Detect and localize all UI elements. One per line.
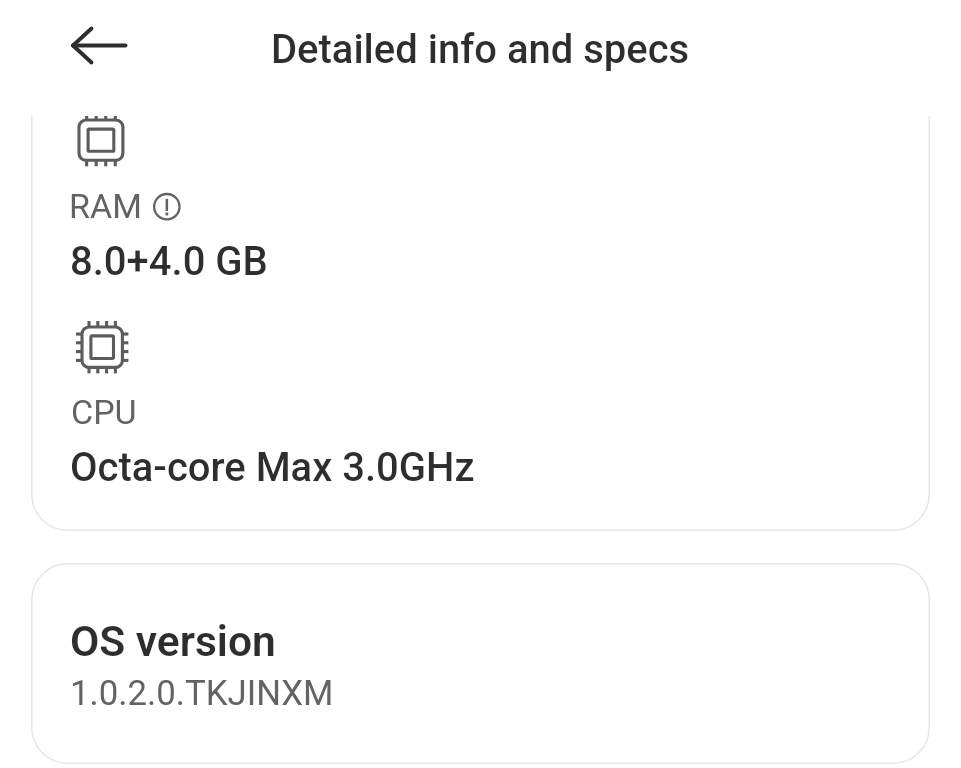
button[interactable] (31, 291, 930, 531)
button[interactable] (31, 116, 930, 291)
button[interactable] (31, 563, 930, 764)
staticText: 1.0.2.0.TKJINXM (70, 673, 334, 714)
staticText: OS version (70, 617, 276, 667)
button[interactable]: About RAM (153, 193, 181, 221)
staticText: CPU (71, 392, 137, 432)
staticText: 8.0+4.0 GB (70, 238, 268, 285)
button[interactable]: Navigate up (48, 21, 102, 75)
staticText: Octa-core Max 3.0GHz (70, 444, 475, 491)
staticText: RAM (69, 186, 142, 226)
staticText: Detailed info and specs (271, 26, 690, 73)
